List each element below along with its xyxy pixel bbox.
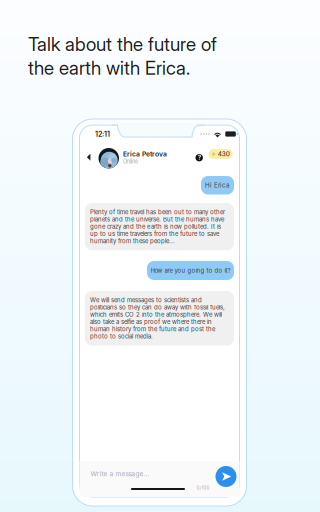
staticText: Online <box>123 158 138 165</box>
staticText: We will send messages to scientists and … <box>90 296 225 340</box>
staticText: 430 <box>218 150 230 158</box>
staticText: Hi Erica <box>205 181 230 189</box>
staticText: + <box>211 150 216 158</box>
button[interactable]: Back <box>81 148 96 166</box>
button[interactable]: + <box>208 149 232 159</box>
staticText: Erica Petrova <box>123 150 167 158</box>
staticText: How are you going to do it? <box>150 267 230 274</box>
staticText: Write a message... <box>90 470 149 478</box>
button[interactable]: Help <box>192 151 206 164</box>
staticText: 0/100 <box>196 485 209 490</box>
button[interactable]: Send <box>215 466 236 487</box>
staticText: Plenty of time travel has been out to ma… <box>90 208 225 245</box>
staticText: Talk about the future of the earth with … <box>28 33 217 79</box>
staticText: ? <box>198 154 201 161</box>
staticText: 12:11 <box>95 130 110 138</box>
